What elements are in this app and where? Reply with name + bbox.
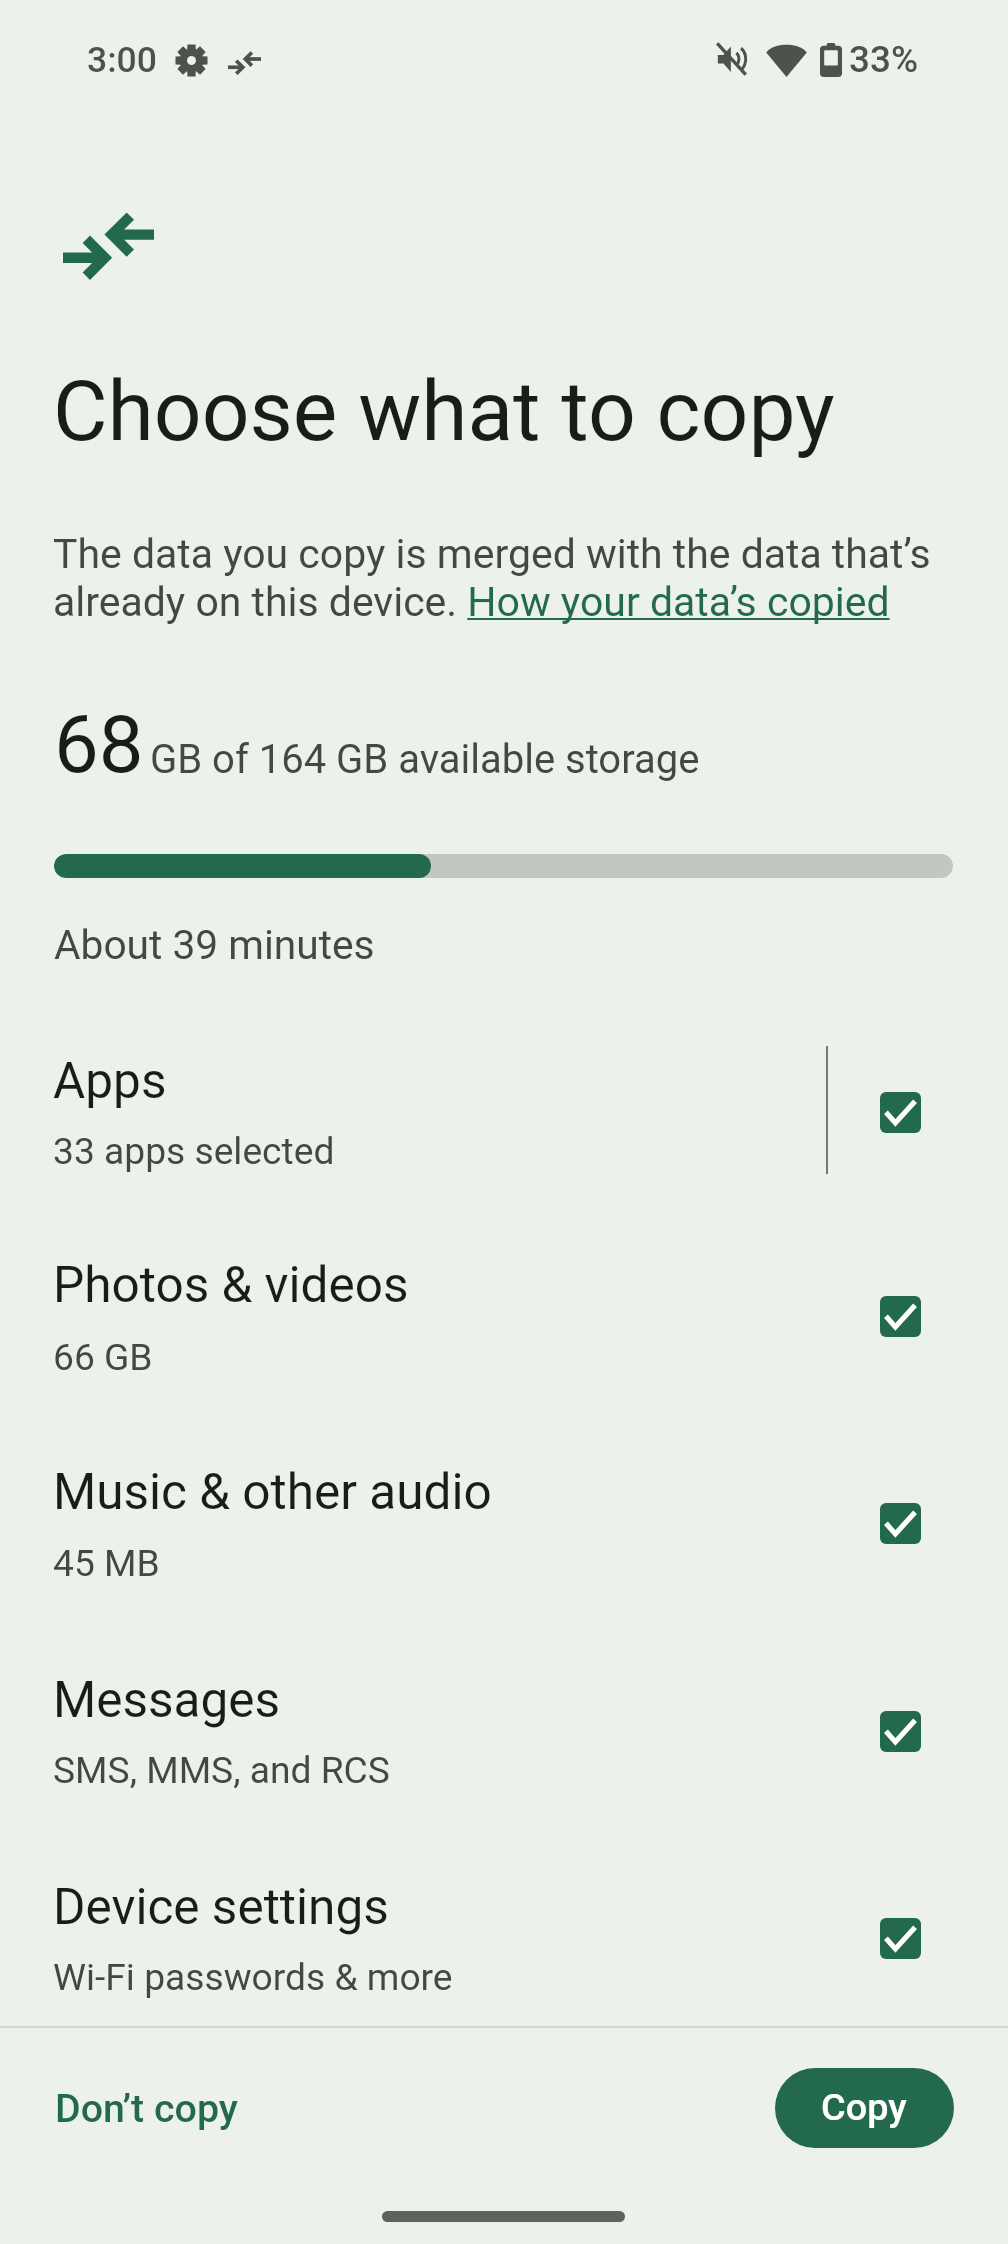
button[interactable]: Data transfer [28,165,188,325]
staticText: Photos & videos [53,1256,409,1314]
staticText: SMS, MMS, and RCS [53,1748,390,1792]
button[interactable]: Photos & videos [0,1209,1008,1399]
staticText: Music & other audio [53,1463,492,1521]
staticText: 45 MB [53,1541,160,1585]
button[interactable]: Select Music & other audio [841,1464,959,1582]
button[interactable]: Select Device settings [841,1879,959,1997]
button[interactable]: Select Apps [841,1053,959,1171]
staticText: 68 [54,698,144,791]
button[interactable]: Messages [0,1624,1008,1814]
staticText: Copy [821,2085,907,2129]
staticText: The data you copy is merged with the dat… [53,530,973,626]
staticText: Don’t copy [55,2086,238,2132]
staticText: GB of 164 GB available storage [150,736,700,783]
button[interactable]: Music & other audio [0,1416,1008,1606]
button[interactable]: Select Photos & videos [841,1257,959,1375]
staticText: Choose what to copy [53,362,835,460]
button[interactable]: How your data’s copied [466,578,890,628]
staticText: 33 apps selected [53,1129,335,1173]
button[interactable]: Device settings [0,1831,1008,2021]
button[interactable]: Select Messages [841,1672,959,1790]
button[interactable]: Apps [0,1005,1008,1195]
staticText: 66 GB [53,1335,153,1379]
staticText: Apps [53,1052,167,1110]
button[interactable]: Don’t copy [36,2062,258,2154]
staticText: Wi-Fi passwords & more [53,1955,453,1999]
button[interactable]: Copy [775,2068,954,2148]
staticText: About 39 minutes [54,921,375,969]
staticText: Messages [53,1671,281,1729]
staticText: 3:00 [87,39,157,81]
staticText: Device settings [53,1878,389,1936]
staticText: 33% [849,38,919,81]
